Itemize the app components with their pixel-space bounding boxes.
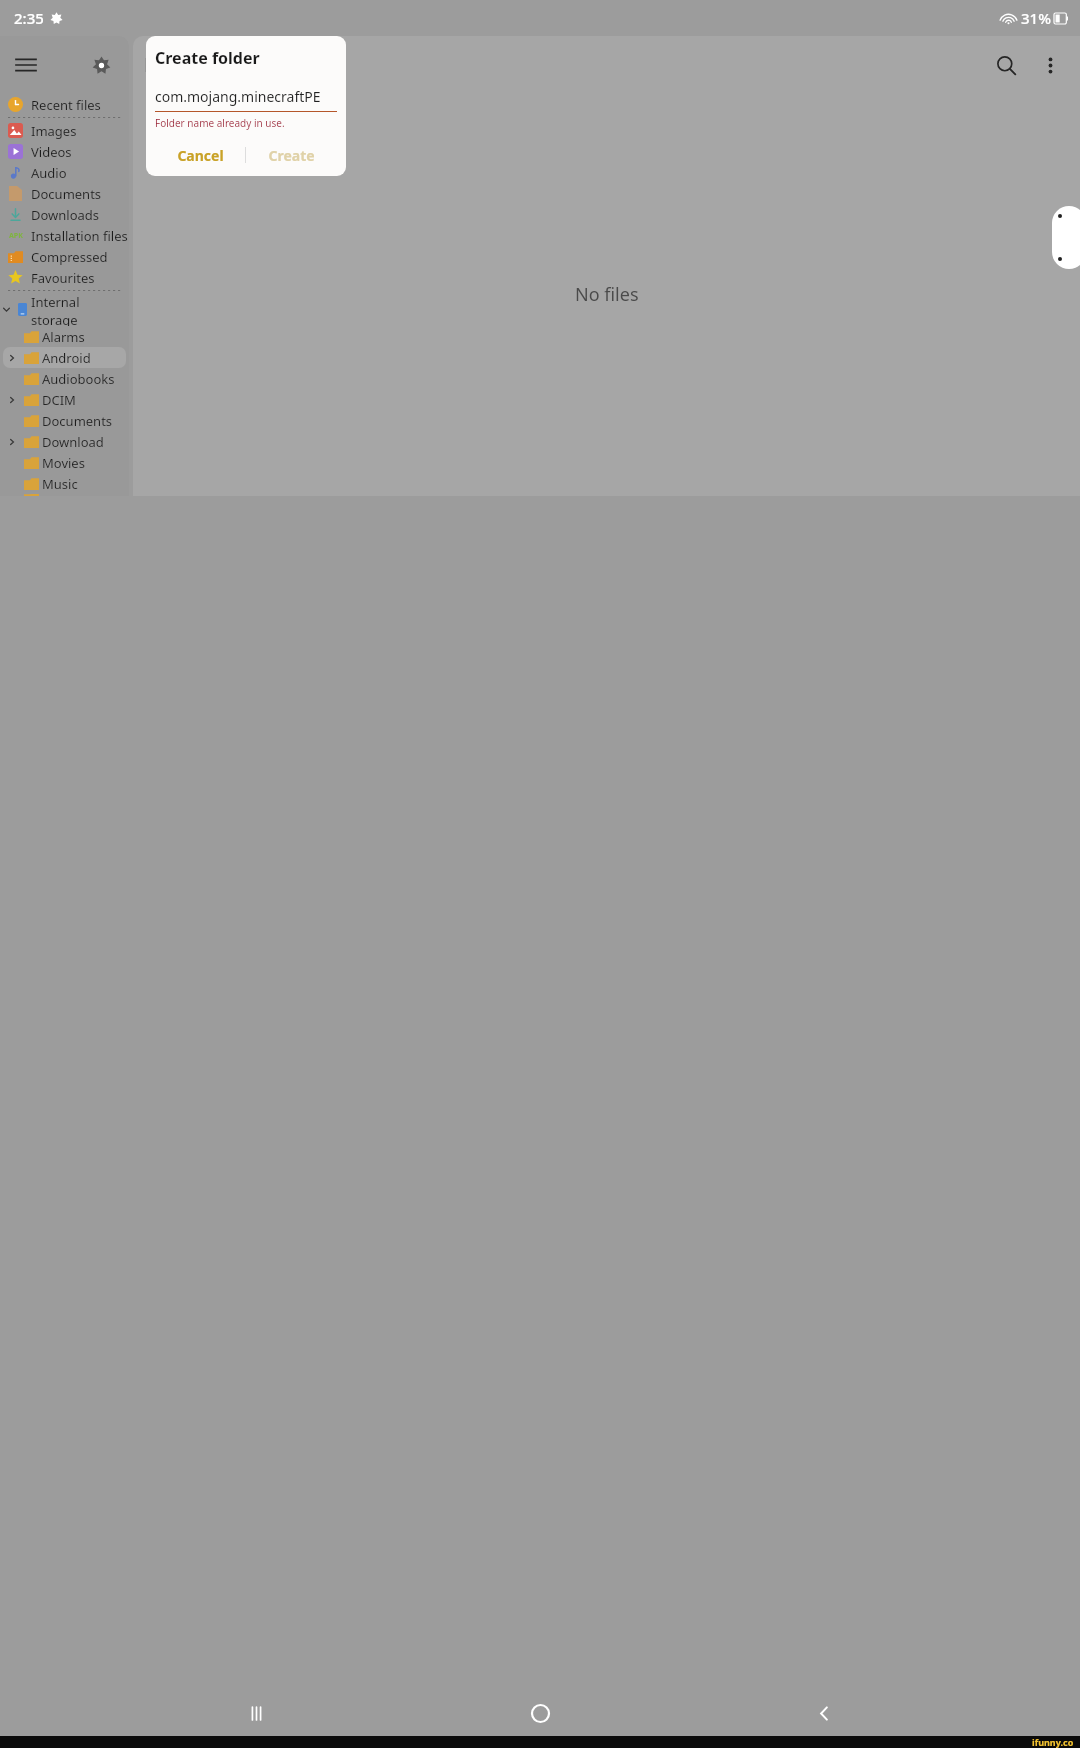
button[interactable]: Search: [984, 43, 1028, 87]
button[interactable]: Alarms: [3, 326, 126, 347]
staticText: Create folder: [155, 47, 260, 69]
staticText: Create: [268, 146, 315, 165]
button[interactable]: Settings: [79, 43, 123, 87]
staticText: Alarms: [42, 328, 85, 346]
button[interactable]: Videos: [0, 141, 129, 162]
button[interactable]: Downloads: [0, 204, 129, 225]
staticText: 2:35: [14, 8, 44, 28]
button[interactable]: Recents: [228, 1690, 284, 1736]
button[interactable]: Internal storage: [0, 293, 129, 326]
button[interactable]: [1052, 206, 1080, 269]
staticText: Audio: [31, 164, 67, 182]
staticText: Android: [42, 349, 91, 367]
staticText: My Files: [144, 52, 216, 78]
button[interactable]: Create: [246, 138, 337, 172]
button[interactable]: Audio: [0, 162, 129, 183]
button[interactable]: APK: [0, 225, 129, 246]
staticText: Audiobooks: [42, 370, 115, 388]
staticText: DCIM: [42, 391, 76, 409]
button[interactable]: Android: [3, 347, 126, 368]
button[interactable]: Download: [3, 431, 126, 452]
staticText: Downloads: [31, 206, 100, 224]
staticText: Compressed: [31, 248, 108, 266]
staticText: Internal storage: [31, 293, 129, 326]
button[interactable]: Menu: [4, 43, 48, 87]
staticText: Movies: [42, 454, 85, 472]
staticText: Documents: [31, 185, 102, 203]
staticText: Documents: [42, 412, 113, 430]
button[interactable]: Images: [0, 120, 129, 141]
staticText: APK: [9, 231, 23, 241]
staticText: Cancel: [177, 146, 224, 165]
button[interactable]: Audiobooks: [3, 368, 126, 389]
button[interactable]: Compressed: [0, 246, 129, 267]
button[interactable]: Documents: [3, 410, 126, 431]
staticText: Installation files: [31, 227, 128, 245]
button[interactable]: Cancel: [155, 138, 245, 172]
button[interactable]: Back: [796, 1690, 852, 1736]
button[interactable]: Movies: [3, 452, 126, 473]
staticText: Favourites: [31, 269, 95, 287]
staticText: No files: [575, 282, 639, 307]
button[interactable]: Favourites: [0, 267, 129, 288]
staticText: Images: [31, 122, 77, 140]
button[interactable]: More options: [1028, 43, 1072, 87]
button[interactable]: Recent files: [0, 94, 129, 115]
staticText: Music: [42, 475, 78, 493]
staticText: Folder name already in use.: [155, 116, 285, 130]
staticText: Recent files: [31, 96, 101, 114]
staticText: 31%: [1021, 8, 1051, 28]
staticText: Download: [42, 433, 104, 451]
staticText: com.mojang.minecraftPE: [155, 87, 321, 106]
button[interactable]: DCIM: [3, 389, 126, 410]
staticText: Videos: [31, 143, 72, 161]
button[interactable]: Home: [512, 1690, 568, 1736]
button[interactable]: Music: [3, 473, 126, 494]
staticText: ifunny.co: [1032, 1736, 1074, 1748]
button[interactable]: Documents: [0, 183, 129, 204]
button[interactable]: Notifications: [3, 494, 126, 496]
